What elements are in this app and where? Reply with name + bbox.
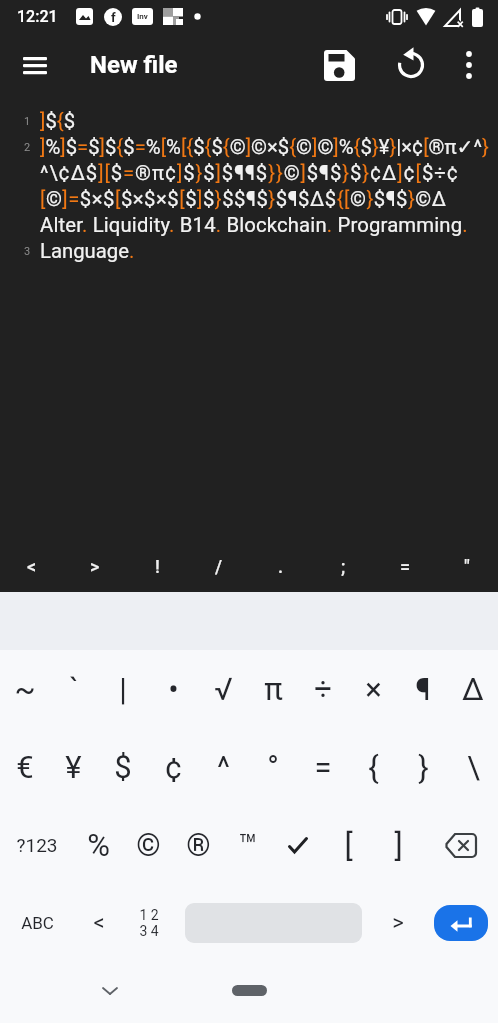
button[interactable]: \ bbox=[448, 728, 498, 806]
staticText: € bbox=[16, 749, 34, 785]
staticText: © bbox=[136, 827, 161, 863]
button[interactable]: } bbox=[398, 728, 448, 806]
staticText: ` bbox=[69, 671, 79, 707]
button[interactable]: = bbox=[298, 728, 348, 806]
staticText: [ bbox=[344, 827, 353, 863]
button[interactable]: ~ bbox=[0, 650, 49, 728]
staticText: $ bbox=[114, 749, 132, 785]
staticText: • bbox=[168, 671, 179, 707]
button[interactable] bbox=[232, 985, 267, 996]
button[interactable]: . bbox=[250, 540, 312, 592]
button[interactable]: ! bbox=[126, 540, 188, 592]
staticText: > bbox=[392, 910, 404, 936]
button[interactable]: ¥ bbox=[49, 728, 98, 806]
staticText: Δ bbox=[462, 671, 484, 707]
staticText: ^\¢Δ$][$=®π¢]$}$]$¶¶$}}©]$¶$}$}¢Δ]¢[$÷¢ bbox=[40, 161, 459, 185]
button[interactable]: € bbox=[0, 728, 49, 806]
staticText: > bbox=[90, 556, 100, 577]
staticText: Language. bbox=[40, 239, 135, 263]
button[interactable]: π bbox=[248, 650, 298, 728]
staticText: f bbox=[111, 10, 116, 25]
staticText: / bbox=[215, 556, 223, 577]
staticText: × bbox=[365, 671, 382, 707]
staticText: ¥ bbox=[65, 749, 82, 785]
button[interactable]: • bbox=[148, 650, 198, 728]
button[interactable]: | bbox=[98, 650, 148, 728]
button[interactable]: > bbox=[63, 540, 126, 592]
staticText: < bbox=[93, 910, 105, 936]
button[interactable]: ¶ bbox=[398, 650, 448, 728]
button[interactable] bbox=[273, 806, 323, 884]
staticText: Inv bbox=[137, 12, 148, 21]
staticText: ; bbox=[341, 556, 346, 577]
staticText: ]${$ bbox=[40, 109, 76, 133]
staticText: \ bbox=[467, 749, 480, 785]
button[interactable]: < bbox=[0, 540, 63, 592]
staticText: ™ bbox=[238, 827, 258, 863]
staticText: ÷ bbox=[314, 671, 332, 707]
staticText: ° bbox=[267, 749, 279, 785]
button[interactable]: ] bbox=[373, 806, 423, 884]
staticText: ® bbox=[186, 827, 211, 863]
button[interactable]: " bbox=[436, 540, 498, 592]
staticText: 1 2 3 4 bbox=[139, 907, 159, 939]
button[interactable]: ; bbox=[312, 540, 374, 592]
staticText: 3 bbox=[24, 245, 31, 258]
staticText: ]%]$=$]${$=%[%[{${${©]©×${©]©]%{$}¥}|×¢[… bbox=[40, 135, 489, 159]
button[interactable]: ° bbox=[248, 728, 298, 806]
button[interactable]: ABC bbox=[0, 884, 74, 962]
staticText: { bbox=[368, 749, 379, 785]
staticText: = bbox=[400, 556, 411, 577]
button[interactable]: × bbox=[348, 650, 398, 728]
button[interactable] bbox=[11, 41, 59, 89]
button[interactable]: [ bbox=[323, 806, 373, 884]
staticText: ~ bbox=[14, 671, 36, 707]
button[interactable]: ® bbox=[173, 806, 223, 884]
button[interactable]: > bbox=[373, 884, 423, 962]
button[interactable]: Δ bbox=[448, 650, 498, 728]
button[interactable]: < bbox=[74, 884, 124, 962]
staticText: 12:21 bbox=[17, 7, 58, 26]
button[interactable]: 1 2 3 4 bbox=[124, 884, 174, 962]
staticText: < bbox=[27, 556, 37, 577]
staticText: = bbox=[314, 749, 332, 785]
button[interactable]: = bbox=[374, 540, 436, 592]
staticText: " bbox=[464, 556, 470, 577]
button[interactable] bbox=[92, 977, 128, 1005]
button[interactable]: ` bbox=[49, 650, 98, 728]
button[interactable]: { bbox=[348, 728, 398, 806]
button[interactable]: ^ bbox=[198, 728, 248, 806]
button[interactable]: $ bbox=[98, 728, 148, 806]
staticText: ?123 bbox=[16, 834, 58, 856]
button[interactable]: ™ bbox=[223, 806, 273, 884]
staticText: ABC bbox=[21, 913, 54, 933]
button[interactable]: √ bbox=[198, 650, 248, 728]
staticText: } bbox=[418, 749, 429, 785]
button[interactable] bbox=[445, 41, 493, 89]
staticText: ! bbox=[155, 556, 160, 577]
button[interactable]: % bbox=[74, 806, 123, 884]
button[interactable]: ?123 bbox=[0, 806, 74, 884]
staticText: [©]=$×$[$×$×$[$]$}$$¶$}$¶$Δ${[©}$¶$}©Δ bbox=[40, 187, 447, 211]
button[interactable] bbox=[387, 41, 435, 89]
staticText: | bbox=[119, 671, 127, 707]
button[interactable]: / bbox=[188, 540, 250, 592]
staticText: New file bbox=[90, 51, 178, 79]
button[interactable] bbox=[315, 41, 363, 89]
staticText: √ bbox=[214, 671, 233, 707]
button[interactable]: ÷ bbox=[298, 650, 348, 728]
staticText: 1 bbox=[24, 115, 31, 128]
staticText: ] bbox=[394, 827, 403, 863]
button[interactable] bbox=[434, 905, 488, 941]
staticText: Alter. Liquidity. B14. Blockchain. Progr… bbox=[40, 213, 468, 237]
staticText: 2 bbox=[24, 141, 31, 154]
staticText: . bbox=[278, 556, 284, 577]
staticText: ¶ bbox=[415, 671, 431, 707]
button[interactable] bbox=[423, 806, 498, 884]
button[interactable]: ¢ bbox=[148, 728, 198, 806]
staticText: % bbox=[87, 827, 110, 863]
button[interactable]: © bbox=[123, 806, 173, 884]
staticText: ¢ bbox=[165, 749, 182, 785]
staticText: ^ bbox=[217, 749, 230, 785]
